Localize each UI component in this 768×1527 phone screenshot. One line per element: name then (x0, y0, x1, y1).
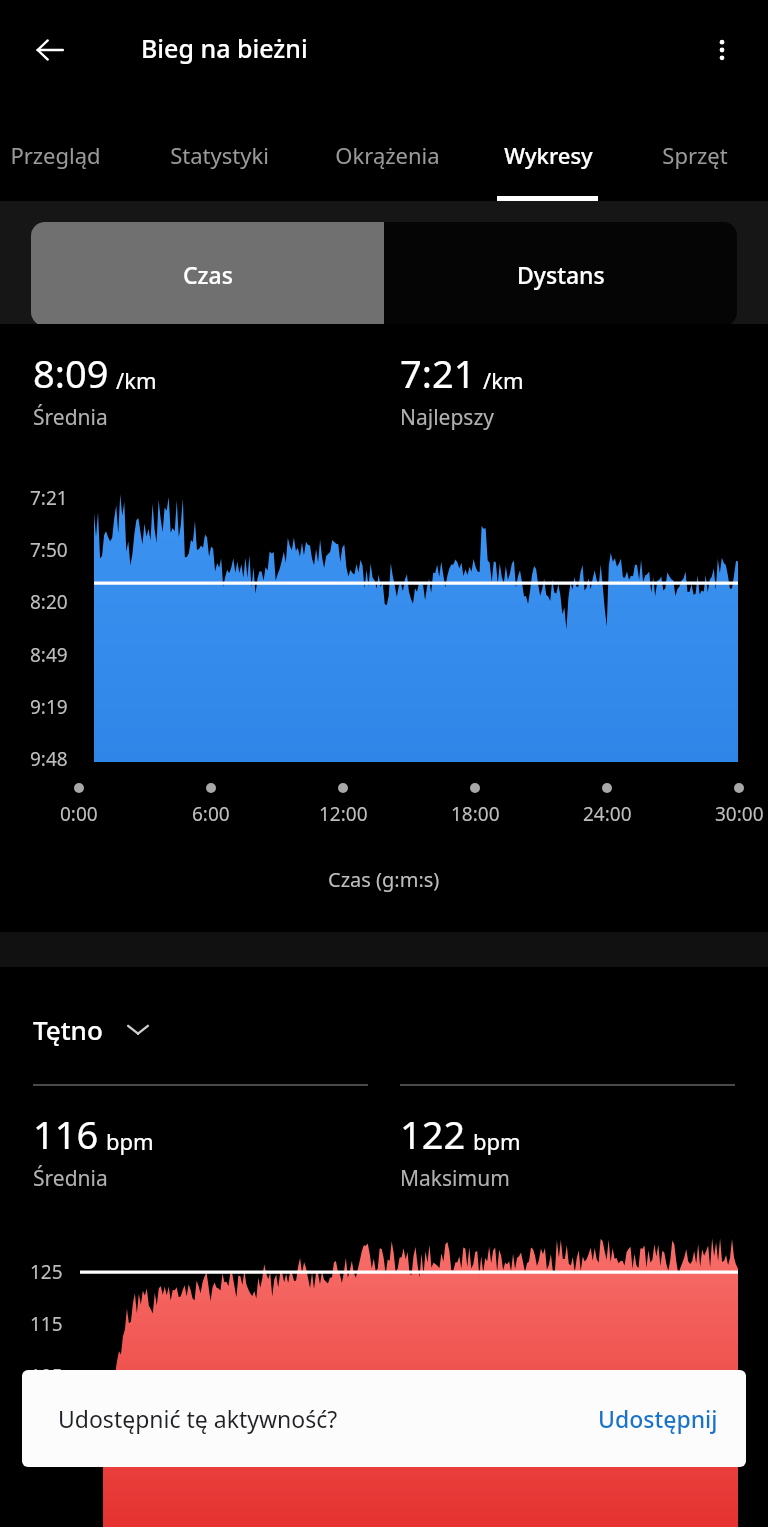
staticText: Udostępnij (598, 1403, 718, 1434)
button[interactable]: Statystyki (155, 100, 283, 201)
staticText: 6:00 (192, 801, 230, 827)
staticText: Najlepszy (400, 403, 494, 432)
staticText: Dystans (517, 259, 605, 290)
staticText: Bieg na bieżni (141, 31, 308, 65)
button[interactable]: Czas (31, 222, 384, 326)
button[interactable]: Wykresy (492, 100, 604, 201)
button[interactable]: Udostępnij (584, 1393, 732, 1444)
staticText: Udostępnić tę aktywność? (58, 1403, 338, 1434)
staticText: 7:21 (30, 485, 68, 511)
staticText: Przegląd (10, 140, 101, 170)
button[interactable]: More options (694, 22, 750, 78)
button[interactable]: Dystans (384, 222, 737, 326)
staticText: 30:00 (715, 801, 764, 827)
button[interactable]: Przegląd (0, 100, 115, 201)
staticText: 7:50 (30, 537, 68, 563)
staticText: 8:49 (30, 642, 68, 668)
button[interactable]: Back (22, 22, 78, 78)
staticText: Sprzęt (662, 140, 728, 170)
button[interactable]: Okrążenia (321, 100, 453, 201)
staticText: 122 (400, 1108, 466, 1160)
staticText: Okrążenia (335, 140, 440, 170)
staticText: 115 (30, 1311, 63, 1337)
staticText: Tętno (33, 1012, 103, 1047)
staticText: /km (116, 365, 157, 395)
staticText: 8:09 (33, 347, 109, 399)
staticText: Średnia (33, 403, 108, 432)
staticText: 18:00 (451, 801, 500, 827)
staticText: Średnia (33, 1164, 108, 1193)
staticText: Statystyki (170, 140, 269, 170)
staticText: bpm (473, 1126, 521, 1156)
staticText: Czas (g:m:s) (328, 866, 440, 893)
staticText: bpm (106, 1126, 154, 1156)
staticText: 105 (30, 1363, 63, 1389)
button[interactable]: Tętno (33, 1005, 151, 1053)
staticText: 12:00 (319, 801, 368, 827)
staticText: 116 (33, 1108, 99, 1160)
staticText: 125 (30, 1259, 63, 1285)
staticText: 9:19 (30, 694, 68, 720)
other: Expand (125, 1016, 151, 1042)
staticText: 9:48 (30, 746, 68, 772)
staticText: 24:00 (583, 801, 632, 827)
staticText: 7:21 (400, 347, 476, 399)
staticText: Wykresy (504, 140, 593, 170)
staticText: 8:20 (30, 589, 68, 615)
staticText: 0:00 (60, 801, 98, 827)
button[interactable]: Sprzęt (643, 100, 747, 201)
staticText: Maksimum (400, 1164, 510, 1193)
staticText: Czas (183, 259, 233, 290)
staticText: /km (483, 365, 524, 395)
